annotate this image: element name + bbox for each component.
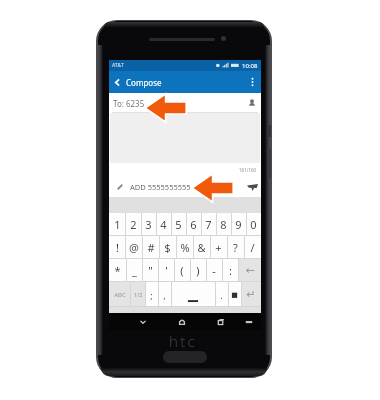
button[interactable]: 2 bbox=[125, 213, 141, 236]
staticText: " bbox=[148, 263, 153, 278]
button[interactable]: / bbox=[244, 236, 261, 259]
button[interactable]: ↵ bbox=[241, 282, 261, 307]
button[interactable]: ▁ bbox=[171, 282, 215, 307]
staticText: 161/160 bbox=[239, 167, 257, 173]
button[interactable]: ! bbox=[109, 236, 125, 259]
button[interactable]: ; bbox=[145, 282, 158, 307]
staticText: 6 bbox=[190, 217, 197, 232]
button[interactable]: ) bbox=[190, 259, 206, 282]
button[interactable]: To: 6235 bbox=[109, 93, 261, 113]
staticText: ( bbox=[180, 263, 184, 278]
button[interactable]: 9 bbox=[231, 213, 246, 236]
staticText: ? bbox=[233, 240, 238, 255]
staticText: + bbox=[215, 240, 222, 255]
button[interactable]: 4 bbox=[156, 213, 171, 236]
staticText: 3 bbox=[145, 217, 152, 232]
button[interactable]: _ bbox=[126, 259, 142, 282]
staticText: 2 bbox=[130, 217, 137, 232]
button[interactable]: ABC bbox=[109, 282, 130, 307]
button[interactable]: * bbox=[109, 259, 126, 282]
staticText: 9 bbox=[235, 217, 242, 232]
staticText: . bbox=[220, 289, 223, 301]
button[interactable]: Choose contact bbox=[243, 93, 261, 113]
button[interactable]: @ bbox=[125, 236, 142, 259]
button[interactable]: . bbox=[215, 282, 228, 307]
staticText: - bbox=[212, 263, 216, 278]
staticText: # bbox=[147, 240, 155, 255]
button[interactable]: 0 bbox=[246, 213, 261, 236]
button[interactable]: 6 bbox=[186, 213, 201, 236]
staticText: htc bbox=[169, 331, 197, 351]
staticText: ) bbox=[196, 263, 200, 278]
button[interactable]: 5 bbox=[171, 213, 186, 236]
staticText: $ bbox=[164, 240, 171, 255]
staticText: Compose bbox=[126, 77, 162, 88]
staticText: ▁ bbox=[188, 287, 198, 302]
button[interactable]: 1 bbox=[109, 213, 125, 236]
button[interactable]: ← bbox=[238, 259, 261, 282]
button[interactable]: 1/2 bbox=[130, 282, 145, 307]
staticText: ← bbox=[245, 264, 255, 277]
button[interactable]: 3 bbox=[141, 213, 156, 236]
staticText: 1 bbox=[114, 217, 121, 232]
button[interactable]: More options bbox=[244, 71, 261, 93]
staticText: : bbox=[229, 263, 232, 278]
button[interactable]: Attach bbox=[109, 177, 130, 197]
button[interactable]: " bbox=[142, 259, 158, 282]
button[interactable]: ■ bbox=[228, 282, 241, 307]
staticText: % bbox=[180, 240, 190, 255]
staticText: 8 bbox=[220, 217, 227, 232]
button[interactable]: + bbox=[210, 236, 227, 259]
button[interactable]: ( bbox=[174, 259, 190, 282]
button[interactable]: $ bbox=[159, 236, 176, 259]
staticText: AT&T bbox=[112, 62, 124, 69]
staticText: _ bbox=[132, 263, 137, 278]
staticText: 7 bbox=[205, 217, 212, 232]
button[interactable]: 7 bbox=[201, 213, 216, 236]
staticText: 4 bbox=[160, 217, 167, 232]
staticText: , bbox=[163, 289, 166, 301]
staticText: 10:08 bbox=[242, 62, 258, 70]
button[interactable]: 8 bbox=[216, 213, 231, 236]
staticText: & bbox=[197, 240, 206, 255]
button[interactable]: # bbox=[142, 236, 159, 259]
staticText: ↵ bbox=[246, 288, 256, 301]
staticText: ! bbox=[116, 240, 119, 255]
button[interactable]: Recent apps bbox=[214, 313, 228, 330]
staticText: ADD 5555555555 bbox=[130, 182, 191, 192]
staticText: ■ bbox=[231, 291, 238, 299]
staticText: * bbox=[114, 263, 121, 278]
button[interactable]: % bbox=[176, 236, 193, 259]
staticText: To: 6235 bbox=[113, 98, 145, 109]
staticText: ' bbox=[165, 263, 168, 278]
button[interactable]: - bbox=[206, 259, 222, 282]
button[interactable]: Home bbox=[175, 313, 189, 330]
button[interactable]: & bbox=[193, 236, 210, 259]
staticText: 0 bbox=[250, 217, 257, 232]
staticText: ; bbox=[150, 289, 153, 301]
staticText: 5 bbox=[175, 217, 182, 232]
staticText: ABC bbox=[114, 291, 126, 299]
button[interactable]: ? bbox=[227, 236, 244, 259]
staticText: @ bbox=[129, 240, 139, 255]
button[interactable]: , bbox=[158, 282, 171, 307]
button[interactable]: ' bbox=[158, 259, 174, 282]
button[interactable]: Send bbox=[243, 177, 261, 197]
button[interactable]: Hide keyboard bbox=[242, 313, 256, 330]
button[interactable]: : bbox=[222, 259, 238, 282]
button[interactable]: Back bbox=[136, 313, 150, 330]
staticText: / bbox=[250, 240, 255, 255]
button[interactable]: Back bbox=[109, 71, 126, 93]
staticText: 1/2 bbox=[133, 291, 143, 299]
